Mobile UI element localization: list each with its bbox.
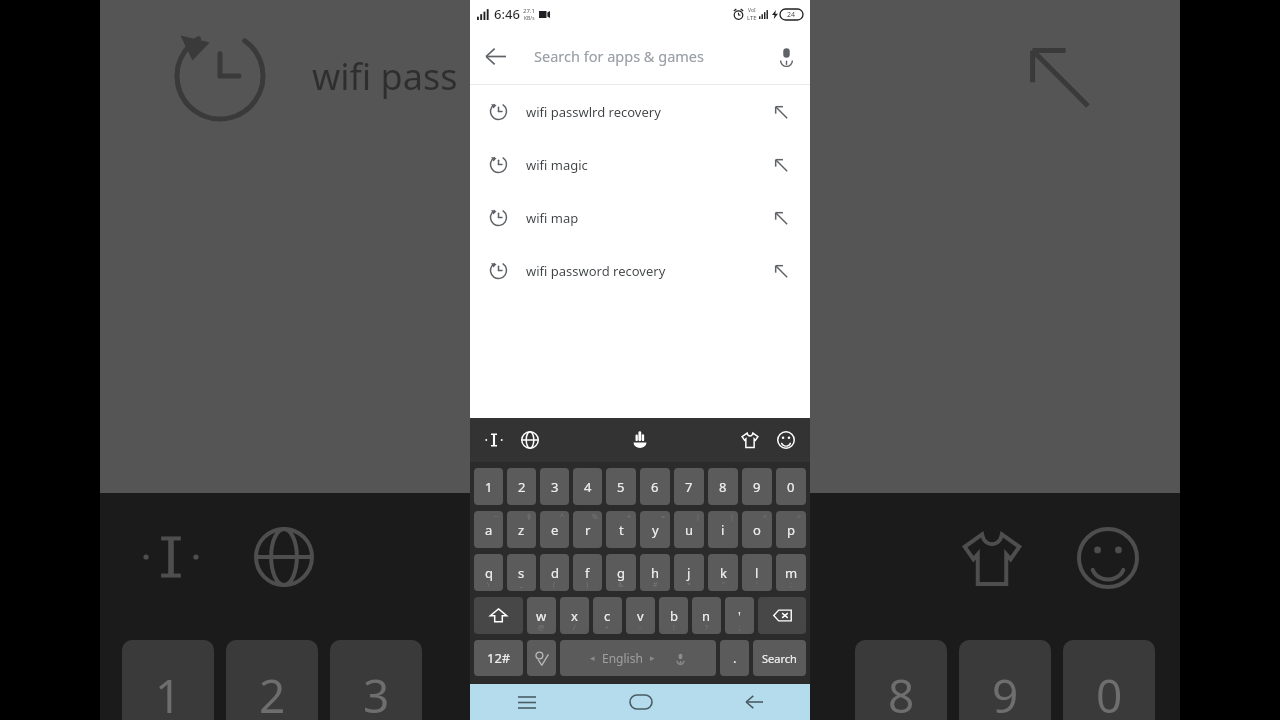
button[interactable]: Shift (474, 597, 523, 634)
button[interactable]: Home (584, 684, 697, 720)
button[interactable]: f (573, 554, 602, 591)
button[interactable]: o (742, 511, 772, 548)
button[interactable]: wifi map (470, 191, 810, 244)
button[interactable]: a (474, 511, 503, 548)
button[interactable]: v (626, 597, 655, 634)
button[interactable]: 0 (776, 468, 806, 505)
staticText: LTE (747, 14, 757, 22)
button[interactable]: s (507, 554, 536, 591)
staticText: ^ (560, 512, 565, 522)
button[interactable]: r (573, 511, 602, 548)
staticText: Search (762, 651, 797, 666)
staticText: b (670, 607, 678, 625)
button[interactable]: n (692, 597, 721, 634)
staticText: * (687, 580, 691, 590)
button[interactable]: Backspace (758, 597, 806, 634)
staticText: ? (705, 623, 709, 633)
staticText: wifi pass (312, 52, 458, 101)
button[interactable]: Back (470, 31, 520, 81)
staticText: _ (520, 580, 524, 590)
staticText: @ (538, 623, 545, 633)
staticText: ! (673, 623, 675, 633)
button[interactable]: y (640, 511, 670, 548)
staticText: 1 (155, 664, 182, 720)
staticText: / (573, 623, 576, 633)
button[interactable]: k (708, 554, 738, 591)
button[interactable]: Search (753, 640, 806, 676)
staticText: n (702, 607, 711, 625)
staticText: Search for apps & games (534, 46, 704, 66)
staticText: v (637, 607, 644, 625)
staticText: 6:46 (494, 5, 520, 23)
staticText: 0 (1096, 664, 1123, 720)
staticText: 4 (584, 478, 592, 496)
staticText: + (605, 623, 610, 633)
button[interactable]: z (507, 511, 536, 548)
button[interactable]: u (674, 511, 704, 548)
button[interactable]: g (606, 554, 636, 591)
button[interactable]: . (720, 640, 749, 676)
button[interactable]: c (593, 597, 622, 634)
button[interactable]: w (527, 597, 556, 634)
staticText: 2 (518, 478, 526, 496)
staticText: wifi magic (526, 156, 588, 174)
button[interactable]: ' (725, 597, 754, 634)
button[interactable]: ◂ (560, 640, 716, 676)
button[interactable]: 6 (640, 468, 670, 505)
button[interactable]: 2 (507, 468, 536, 505)
button[interactable]: Emoji (771, 425, 801, 455)
staticText: ; (739, 623, 741, 633)
button[interactable]: x (560, 597, 589, 634)
button[interactable]: wifi magic (470, 138, 810, 191)
staticText: \ (487, 580, 490, 590)
button[interactable] (527, 640, 556, 676)
button[interactable]: 5 (606, 468, 636, 505)
button[interactable]: Handwriting (625, 425, 655, 455)
staticText: 5 (617, 478, 625, 496)
staticText: 9 (992, 664, 1019, 720)
staticText: | (696, 512, 700, 522)
button[interactable]: 4 (573, 468, 602, 505)
button[interactable]: 9 (742, 468, 772, 505)
staticText: 1 (485, 478, 493, 496)
staticText: ) (586, 580, 589, 590)
button[interactable]: t (606, 511, 636, 548)
button[interactable]: j (674, 554, 704, 591)
button[interactable]: q (474, 554, 503, 591)
button[interactable]: i (708, 511, 738, 548)
button[interactable]: 8 (708, 468, 738, 505)
button[interactable]: h (640, 554, 670, 591)
button[interactable]: Cursor (479, 425, 509, 455)
staticText: - (639, 623, 642, 633)
button[interactable]: 3 (540, 468, 569, 505)
button[interactable]: wifi password recovery (470, 244, 810, 297)
staticText: wifi passwlrd recovery (526, 103, 661, 121)
button[interactable]: Back (697, 684, 810, 720)
staticText: y (652, 521, 659, 539)
button[interactable]: wifi passwlrd recovery (470, 85, 810, 138)
staticText: g (617, 564, 625, 582)
button[interactable]: b (659, 597, 688, 634)
button[interactable]: 7 (674, 468, 704, 505)
button[interactable]: Search for apps & games (534, 28, 762, 84)
button[interactable]: Theme (735, 425, 765, 455)
button[interactable]: p (776, 511, 806, 548)
button[interactable]: 12# (474, 640, 523, 676)
button[interactable]: Language (515, 425, 545, 455)
button[interactable]: Recents (470, 684, 584, 720)
button[interactable]: m (776, 554, 806, 591)
button[interactable]: 1 (474, 468, 503, 505)
staticText: 7 (685, 478, 693, 496)
staticText: k (720, 564, 727, 582)
staticText: r (585, 521, 591, 539)
staticText: w (536, 607, 547, 625)
staticText: p (787, 521, 795, 539)
staticText: t (619, 521, 624, 539)
staticText: ◂ (590, 653, 595, 663)
staticText: > (797, 512, 802, 522)
button[interactable]: e (540, 511, 569, 548)
button[interactable]: Voice search (762, 32, 810, 80)
button[interactable]: d (540, 554, 569, 591)
staticText: 8 (719, 478, 727, 496)
button[interactable]: l (742, 554, 772, 591)
